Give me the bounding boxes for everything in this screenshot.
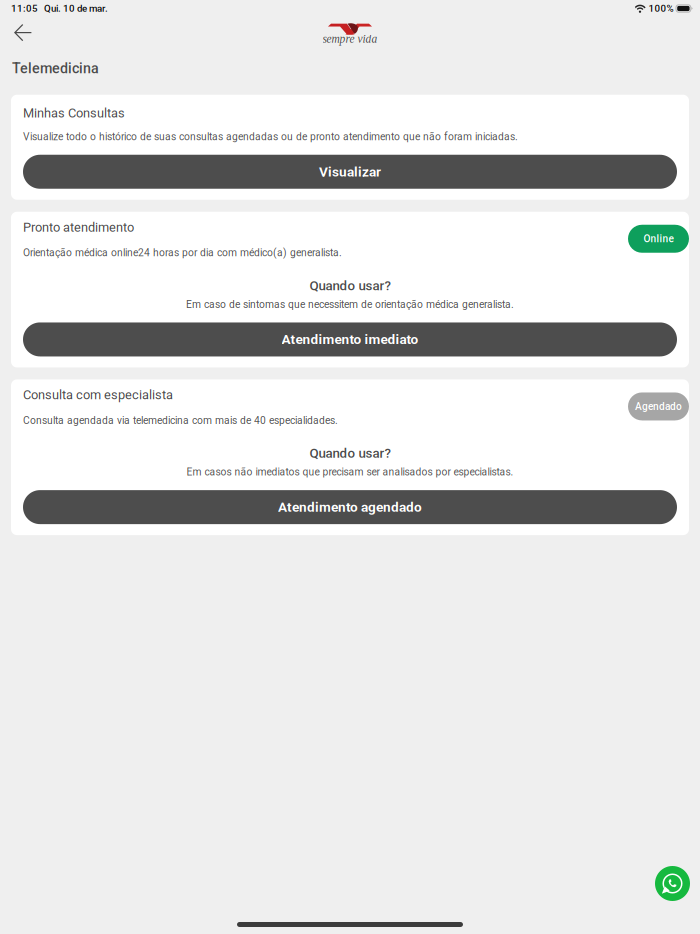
staticText: Em caso de sintomas que necessitem de or… — [186, 298, 514, 310]
staticText: Online — [643, 233, 673, 245]
staticText: sempre vida — [322, 33, 377, 45]
staticText: Atendimento agendado — [278, 499, 422, 515]
staticText: Agendado — [635, 400, 682, 412]
staticText: Visualize todo o histórico de suas consu… — [23, 131, 518, 143]
button[interactable]: Voltar — [5, 17, 41, 49]
staticText: Visualizar — [319, 164, 381, 180]
staticText: Pronto atendimento — [23, 220, 134, 235]
staticText: Em casos não imediatos que precisam ser … — [186, 466, 513, 478]
staticText: 100% — [648, 3, 673, 14]
staticText: Quando usar? — [309, 445, 390, 461]
staticText: Consulta agendada via telemedicina com m… — [23, 414, 338, 426]
staticText: Minhas Consultas — [23, 106, 125, 121]
staticText: Orientação médica online24 horas por dia… — [23, 247, 342, 259]
staticText: 11:05 — [11, 3, 38, 14]
staticText: Telemedicina — [12, 60, 99, 77]
staticText: Quando usar? — [309, 278, 390, 293]
staticText: Atendimento imediato — [281, 331, 418, 347]
button[interactable]: Atendimento imediato — [23, 322, 677, 356]
button[interactable]: Atendimento agendado — [23, 490, 677, 524]
staticText: Qui. 10 de mar. — [44, 3, 108, 14]
button[interactable]: WhatsApp — [655, 866, 690, 901]
staticText: Consulta com especialista — [23, 387, 173, 402]
button[interactable]: Visualizar — [23, 155, 677, 189]
